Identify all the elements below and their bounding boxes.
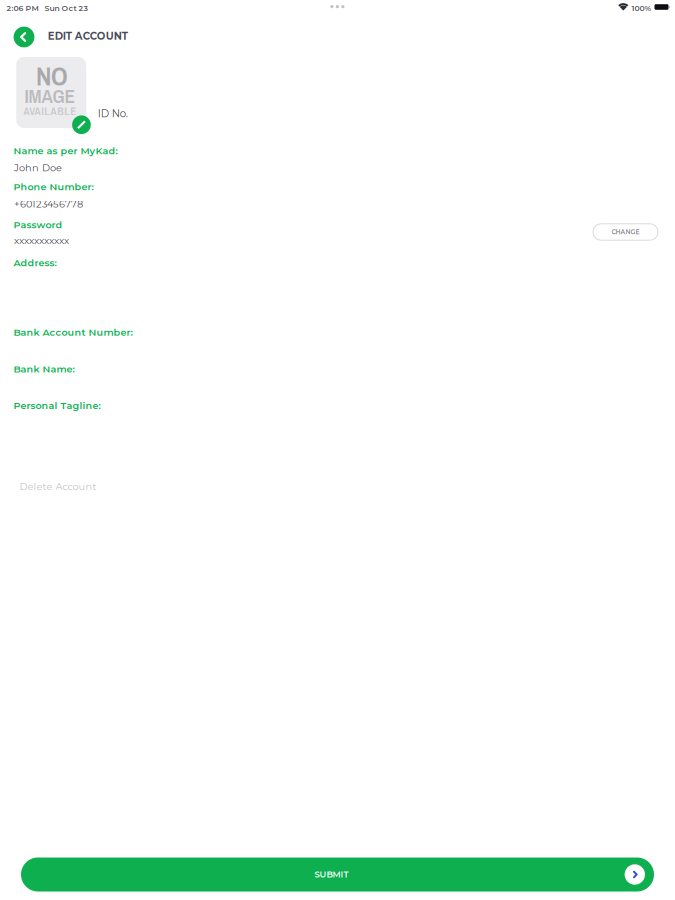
staticText: CHANGE bbox=[611, 228, 639, 236]
staticText: IMAGE bbox=[24, 83, 75, 109]
staticText: Address: bbox=[13, 257, 56, 269]
staticText: Bank Name: bbox=[13, 363, 74, 375]
staticText: xxxxxxxxxxx bbox=[14, 235, 69, 246]
staticText: Name as per MyKad: bbox=[13, 145, 117, 157]
staticText: Bank Account Number: bbox=[13, 326, 132, 338]
button[interactable]: Change profile photo bbox=[16, 57, 91, 133]
staticText: ID No. bbox=[98, 107, 128, 120]
staticText: Delete Account bbox=[19, 480, 96, 492]
button[interactable]: Back bbox=[7, 20, 40, 53]
staticText: Phone Number: bbox=[13, 181, 93, 193]
staticText: NO bbox=[36, 58, 68, 94]
button[interactable]: Delete Account bbox=[19, 480, 96, 492]
staticText: Password bbox=[13, 219, 62, 231]
staticText: 2:06 PM bbox=[7, 3, 39, 13]
staticText: SUBMIT bbox=[314, 869, 348, 880]
staticText: EDIT ACCOUNT bbox=[48, 30, 128, 42]
staticText: AVAILABLE bbox=[23, 104, 76, 119]
staticText: 100% bbox=[631, 3, 651, 13]
button[interactable]: SUBMIT bbox=[21, 857, 654, 891]
button[interactable]: CHANGE bbox=[593, 224, 658, 240]
staticText: Personal Tagline: bbox=[13, 400, 100, 411]
staticText: John Doe bbox=[14, 162, 62, 174]
staticText: +60123456778 bbox=[14, 198, 83, 210]
staticText: Sun Oct 23 bbox=[44, 3, 88, 13]
